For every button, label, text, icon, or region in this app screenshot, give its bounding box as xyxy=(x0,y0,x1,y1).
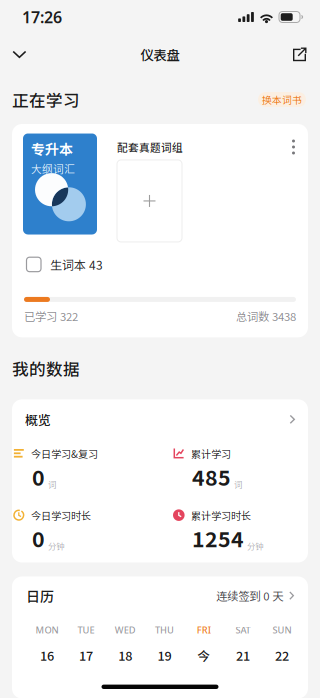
staticText: WED xyxy=(115,624,136,636)
staticText: 日历 xyxy=(26,585,54,606)
staticText: SAT xyxy=(235,624,250,636)
staticText: TUE xyxy=(78,624,95,636)
staticText: THU xyxy=(155,624,174,636)
staticText: 18 xyxy=(118,646,132,664)
button[interactable]: 换本词书 xyxy=(258,92,306,107)
staticText: 配套真题词组 xyxy=(117,139,183,155)
button[interactable]: 连续签到 0 天 xyxy=(216,587,294,604)
staticText: 分钟 xyxy=(247,540,263,552)
staticText: 正在学习 xyxy=(12,87,80,111)
staticText: SUN xyxy=(273,624,292,636)
button[interactable]: Collapse xyxy=(0,34,39,74)
staticText: FRI xyxy=(197,624,211,636)
staticText: 仪表盘 xyxy=(140,45,179,64)
staticText: 大纲词汇 xyxy=(31,161,75,176)
staticText: 专升本 xyxy=(31,138,73,159)
button[interactable]: Share xyxy=(279,34,320,75)
staticText: 分钟 xyxy=(48,540,64,552)
staticText: 累计学习时长 xyxy=(191,508,251,523)
staticText: 16 xyxy=(40,646,54,664)
button[interactable]: Add word set xyxy=(117,155,182,242)
staticText: 17:26 xyxy=(22,6,62,28)
staticText: 0 xyxy=(32,461,45,492)
button[interactable]: 生词本 43 xyxy=(12,242,308,287)
staticText: 词 xyxy=(48,478,56,490)
staticText: 19 xyxy=(157,646,171,664)
staticText: 换本词书 xyxy=(262,92,302,107)
button[interactable]: More options xyxy=(283,133,304,160)
staticText: 今日学习&复习 xyxy=(31,446,98,461)
staticText: 0 xyxy=(32,523,45,553)
staticText: 1254 xyxy=(192,523,244,553)
staticText: 我的数据 xyxy=(12,356,80,380)
staticText: 概览 xyxy=(25,410,51,429)
staticText: 累计学习 xyxy=(191,446,231,461)
staticText: 22 xyxy=(275,646,289,664)
staticText: 485 xyxy=(192,461,231,492)
staticText: 21 xyxy=(236,646,250,664)
button[interactable]: 概览 xyxy=(12,399,308,439)
staticText: 生词本 43 xyxy=(50,256,103,273)
staticText: 总词数 3438 xyxy=(236,308,296,324)
staticText: MON xyxy=(35,624,58,636)
staticText: 今 xyxy=(197,646,210,664)
staticText: 词 xyxy=(234,478,242,490)
staticText: 今日学习时长 xyxy=(31,508,91,523)
staticText: 连续签到 0 天 xyxy=(216,587,283,604)
staticText: 17 xyxy=(79,646,93,664)
staticText: 已学习 322 xyxy=(24,308,78,324)
